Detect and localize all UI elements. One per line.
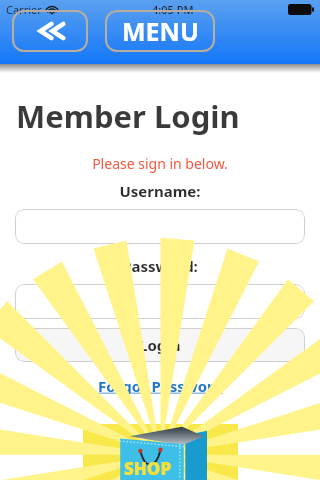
- staticText: Forgot Password: [98, 376, 223, 396]
- staticText: SHOP: [124, 457, 172, 480]
- button[interactable]: Login: [15, 328, 305, 362]
- staticText: Password:: [0, 256, 320, 276]
- staticText: MENU: [122, 14, 199, 48]
- staticText: Username:: [0, 181, 320, 201]
- staticText: Login: [139, 335, 181, 355]
- button[interactable]: Back: [12, 10, 88, 52]
- button[interactable]: Text input: [15, 209, 305, 244]
- staticText: Please sign in below.: [0, 154, 320, 173]
- staticText: Carrier: [6, 2, 42, 17]
- button[interactable]: MENU: [105, 10, 215, 52]
- staticText: 4:05 PM: [152, 2, 194, 17]
- button[interactable]: Shop banner: [83, 424, 238, 480]
- button[interactable]: Text input: [15, 284, 305, 319]
- staticText: Member Login: [16, 95, 240, 137]
- button[interactable]: Forgot Password: [0, 372, 320, 400]
